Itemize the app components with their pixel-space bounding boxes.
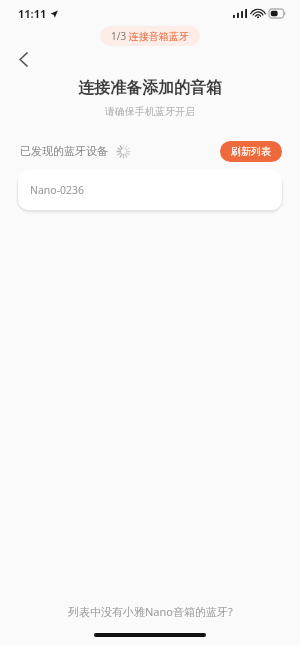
staticText: 11:11 xyxy=(18,6,47,21)
staticText: 列表中没有小雅Nano音箱的蓝牙? xyxy=(68,604,233,619)
button[interactable]: 刷新列表 xyxy=(220,141,282,162)
staticText: 连接准备添加的音箱 xyxy=(78,78,222,98)
button[interactable]: Nano-0236 xyxy=(18,170,282,210)
button[interactable]: 列表中没有小雅Nano音箱的蓝牙? xyxy=(54,599,247,624)
button[interactable]: 返回 xyxy=(8,46,38,72)
staticText: Nano-0236 xyxy=(30,183,85,197)
staticText: 刷新列表 xyxy=(231,145,271,158)
staticText: 1/3 连接音箱蓝牙 xyxy=(111,29,189,43)
staticText: 请确保手机蓝牙开启 xyxy=(105,105,195,118)
button[interactable]: 1/3 连接音箱蓝牙 xyxy=(100,26,200,46)
staticText: 已发现的蓝牙设备 xyxy=(20,144,108,158)
